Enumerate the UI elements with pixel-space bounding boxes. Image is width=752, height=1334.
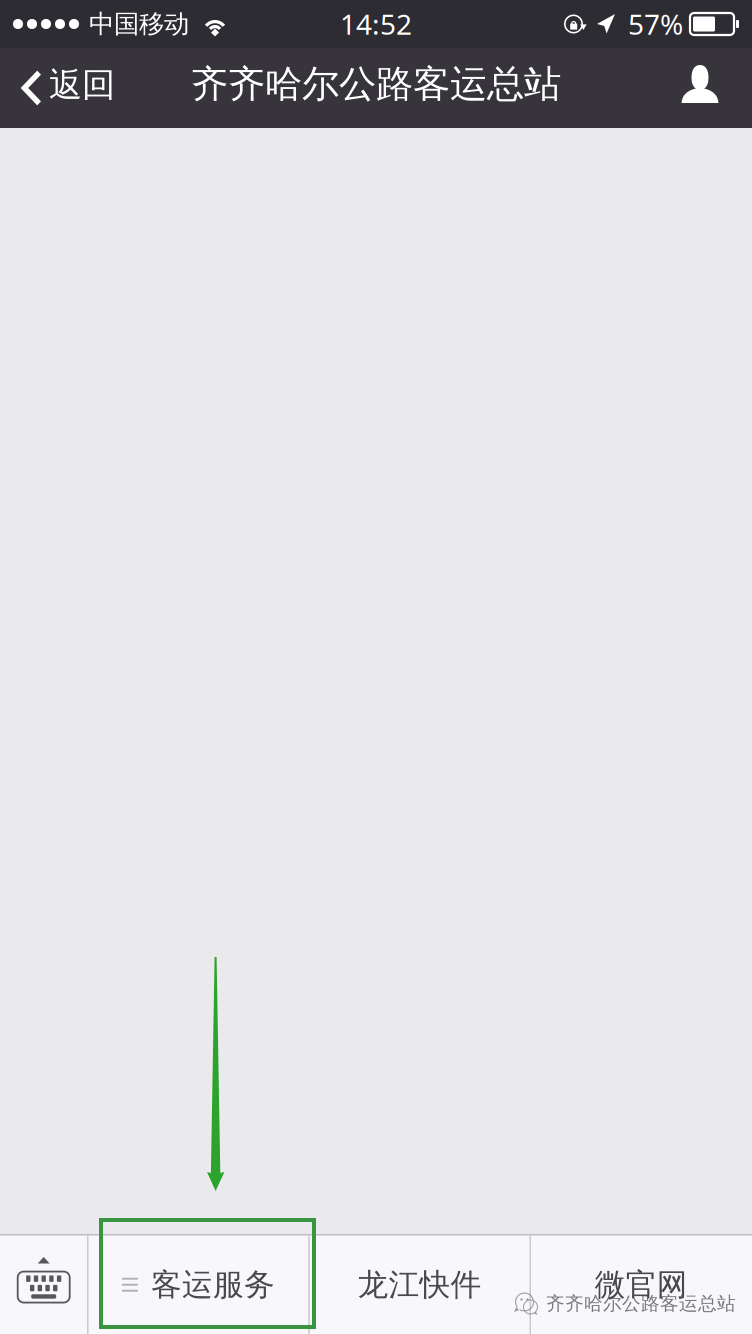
staticText: 57% bbox=[628, 5, 683, 43]
staticText: 返回 bbox=[49, 64, 115, 105]
button[interactable]: Keyboard bbox=[0, 1235, 87, 1334]
staticText: 客运服务 bbox=[151, 1266, 275, 1304]
staticText: 齐齐哈尔公路客运总站 bbox=[191, 61, 561, 107]
staticText: 齐齐哈尔公路客运总站 bbox=[546, 1292, 736, 1315]
button[interactable]: 微官网 bbox=[531, 1235, 752, 1334]
button[interactable]: Contact info bbox=[655, 48, 752, 128]
button[interactable]: 龙江快件 bbox=[310, 1235, 530, 1334]
staticText: 微官网 bbox=[595, 1266, 688, 1304]
staticText: 龙江快件 bbox=[358, 1266, 482, 1304]
button[interactable]: 客运服务 bbox=[88, 1235, 308, 1334]
button[interactable]: 返回 bbox=[0, 48, 135, 128]
staticText: 中国移动 bbox=[89, 8, 189, 39]
staticText: 14:52 bbox=[340, 5, 412, 43]
